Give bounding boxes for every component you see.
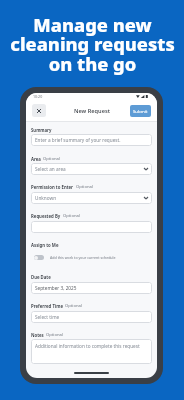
button[interactable]: Select an area xyxy=(31,163,152,175)
staticText: Notes xyxy=(31,332,44,338)
staticText: Submit xyxy=(133,108,148,114)
staticText: Assign to Me xyxy=(31,242,59,248)
staticText: Add this work to your current schedule xyxy=(50,255,116,260)
staticText: Select an area xyxy=(35,166,66,172)
staticText: Additional information to complete this … xyxy=(35,343,140,349)
button[interactable]: Close xyxy=(32,104,46,117)
staticText: Requested By xyxy=(31,213,61,219)
staticText: Due Date xyxy=(31,274,51,280)
staticText: Manage new cleaning requests on the go xyxy=(10,12,175,77)
staticText: September 3, 2025 xyxy=(35,285,77,291)
button[interactable]: Select time xyxy=(31,311,152,323)
staticText: 10:20 xyxy=(33,94,43,99)
staticText: Enter a brief summary of your request. xyxy=(35,137,121,143)
button[interactable]: September 3, 2025 xyxy=(31,282,152,294)
staticText: Optional xyxy=(76,184,93,190)
staticText: Optional xyxy=(43,156,60,162)
button[interactable]: Submit xyxy=(130,105,151,117)
staticText: Permission to Enter xyxy=(31,184,74,190)
staticText: Optional xyxy=(46,332,63,338)
staticText: New Request xyxy=(74,107,110,115)
staticText: Unknown xyxy=(35,195,57,201)
button[interactable]: Additional information to complete this … xyxy=(31,339,152,364)
button[interactable]: Add this work to your current schedule xyxy=(34,255,116,260)
staticText: Summary xyxy=(31,127,52,133)
button[interactable]: Enter a brief summary of your request. xyxy=(31,134,152,146)
staticText: Optional xyxy=(63,213,80,219)
staticText: Select time xyxy=(35,314,60,320)
staticText: Area xyxy=(31,156,41,162)
button[interactable] xyxy=(31,221,152,233)
staticText: Preferred Time xyxy=(31,303,63,309)
staticText: Optional xyxy=(65,303,82,309)
button[interactable]: Unknown xyxy=(31,192,152,204)
